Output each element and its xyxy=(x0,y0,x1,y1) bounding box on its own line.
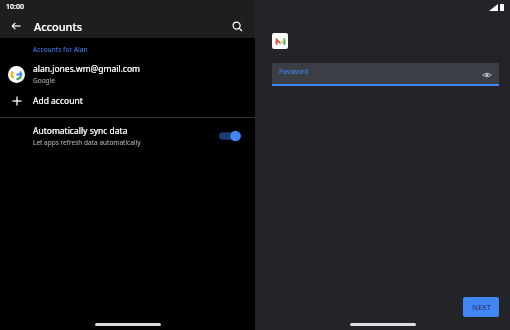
button[interactable]: NEXT xyxy=(463,297,499,317)
staticText: Password xyxy=(279,67,309,76)
staticText: Accounts xyxy=(34,19,83,34)
button[interactable]: Search xyxy=(227,16,247,36)
button[interactable]: Add account xyxy=(0,91,255,111)
staticText: 10:00 xyxy=(6,2,24,12)
staticText: alan.jones.wm@gmail.com xyxy=(33,63,141,75)
button[interactable]: Automatically sync data xyxy=(0,123,255,149)
staticText: Google xyxy=(33,76,55,85)
button[interactable]: Password xyxy=(272,63,499,86)
staticText: NEXT xyxy=(472,302,491,312)
button[interactable]: Back xyxy=(6,16,26,36)
staticText: Automatically sync data xyxy=(33,125,128,137)
button[interactable]: alan.jones.wm@gmail.com xyxy=(0,61,255,87)
staticText: Accounts for Alan xyxy=(33,45,88,54)
staticText: Add account xyxy=(33,95,83,107)
button[interactable]: Show password xyxy=(480,68,494,82)
staticText: Let apps refresh data automatically xyxy=(33,138,141,147)
